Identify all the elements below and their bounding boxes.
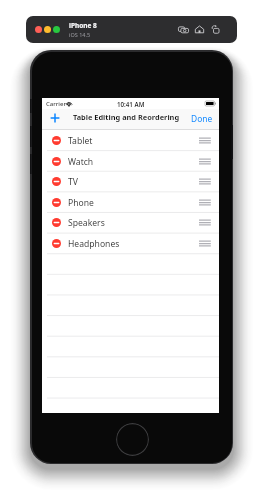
button[interactable]: Delete Headphones [42,233,219,254]
button[interactable]: Home button [116,423,149,456]
button[interactable]: Delete Watch [42,151,219,172]
button[interactable]: Done [191,113,213,124]
button[interactable]: Screenshot [178,24,189,35]
button[interactable]: Delete Phone [52,198,61,207]
button[interactable]: Window control [44,26,51,33]
button[interactable]: Delete Phone [42,192,219,213]
staticText: Table Editing and Reordering [73,112,180,122]
button[interactable]: Delete Tablet [52,136,61,145]
staticText: iPhone 8 [69,21,97,30]
button[interactable]: Reorder TV [199,177,211,186]
button[interactable]: Reorder Tablet [199,136,211,145]
button[interactable]: Window control [53,26,60,33]
button[interactable]: Reorder Watch [199,157,211,166]
staticText: TV [68,176,78,188]
button[interactable]: Rotate [210,24,221,35]
staticText: Carrier [46,100,66,108]
button[interactable]: Delete TV [52,177,61,186]
button[interactable]: Reorder Speakers [199,218,211,227]
button[interactable]: Delete Speakers [52,218,61,227]
staticText: Headphones [68,238,120,250]
staticText: Speakers [68,217,105,229]
button[interactable]: Reorder Phone [199,198,211,207]
staticText: Tablet [68,135,93,147]
button[interactable]: Delete Watch [52,157,61,166]
staticText: Watch [68,156,94,168]
button[interactable]: Delete Speakers [42,212,219,233]
button[interactable]: Delete Tablet [42,130,219,151]
button[interactable]: Window control [35,26,42,33]
button[interactable]: Home [194,24,205,35]
staticText: iOS 14.5 [69,31,91,38]
button[interactable]: Add [48,111,62,125]
staticText: Phone [68,197,94,209]
staticText: Done [191,113,213,124]
staticText: 10:41 AM [117,100,145,108]
button[interactable]: Delete TV [42,171,219,192]
button[interactable]: Delete Headphones [52,239,61,248]
button[interactable]: Reorder Headphones [199,239,211,248]
